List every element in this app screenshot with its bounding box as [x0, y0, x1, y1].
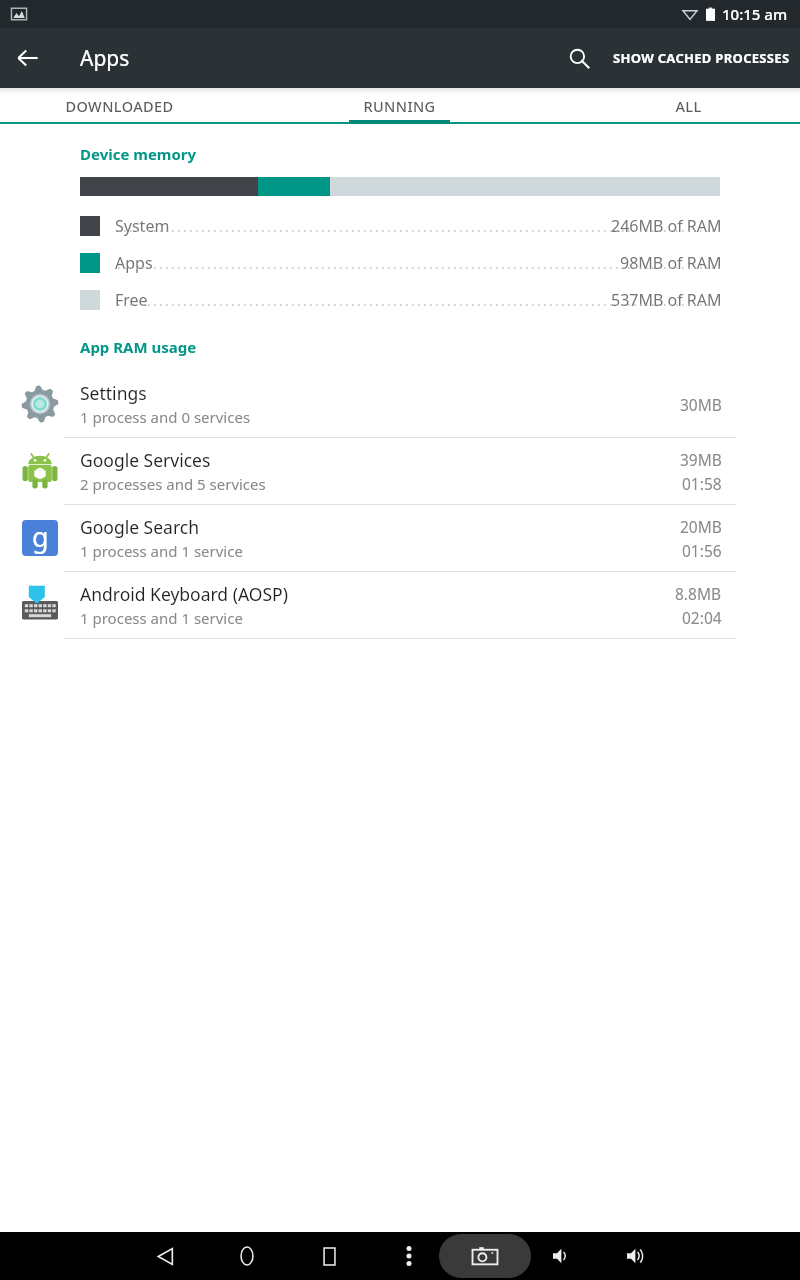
staticText: 98MB of RAM [620, 252, 722, 274]
staticText: 02:04 [682, 607, 722, 628]
button[interactable]: Back [143, 1234, 187, 1278]
staticText: 30MB [680, 394, 722, 415]
button[interactable]: g [0, 505, 800, 571]
staticText: SHOW CACHED PROCESSES [613, 49, 790, 67]
staticText: Apps [80, 44, 130, 73]
button[interactable]: Navigate up [6, 36, 50, 80]
staticText: 10:15 am [722, 4, 788, 24]
button[interactable]: DOWNLOADED [0, 88, 266, 124]
staticText: 1 process and 0 services [80, 407, 251, 427]
button[interactable]: Recent apps [307, 1234, 351, 1278]
staticText: Free [115, 289, 148, 311]
staticText: RUNNING [363, 96, 436, 116]
button[interactable]: Volume down [539, 1234, 583, 1278]
staticText: 20MB [680, 516, 722, 537]
button[interactable]: RUNNING [266, 88, 533, 124]
staticText: 8.8MB [675, 583, 722, 604]
staticText: Apps [115, 252, 153, 274]
button[interactable]: Home [225, 1234, 269, 1278]
staticText: Device memory [80, 144, 197, 164]
staticText: ALL [675, 96, 702, 116]
button[interactable]: Menu [387, 1234, 431, 1278]
staticText: 01:56 [682, 540, 722, 561]
button[interactable]: Android Keyboard (AOSP) [0, 572, 800, 638]
staticText: 1 process and 1 service [80, 541, 243, 561]
staticText: 246MB of RAM [611, 215, 722, 237]
button[interactable]: Volume up [613, 1234, 657, 1278]
staticText: System [115, 215, 170, 237]
button[interactable]: Settings [0, 371, 800, 437]
staticText: g [32, 520, 49, 554]
staticText: Google Services [80, 448, 211, 472]
staticText: Google Search [80, 515, 199, 539]
button[interactable]: Screenshot [439, 1234, 531, 1278]
staticText: 537MB of RAM [611, 289, 722, 311]
button[interactable]: ALL [533, 88, 800, 124]
staticText: 39MB [680, 449, 722, 470]
button[interactable]: Search [555, 34, 603, 82]
staticText: 2 processes and 5 services [80, 474, 266, 494]
staticText: Android Keyboard (AOSP) [80, 582, 288, 606]
staticText: 1 process and 1 service [80, 608, 243, 628]
staticText: 01:58 [682, 473, 722, 494]
button[interactable]: Google Services [0, 438, 800, 504]
staticText: App RAM usage [80, 337, 197, 357]
button[interactable]: SHOW CACHED PROCESSES [603, 28, 800, 88]
staticText: DOWNLOADED [65, 96, 174, 116]
staticText: Settings [80, 381, 147, 405]
